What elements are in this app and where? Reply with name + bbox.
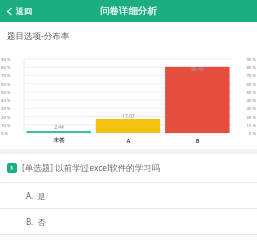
staticText: 50 %: [1, 89, 23, 95]
staticText: 80.49: [163, 66, 232, 73]
staticText: B: [163, 137, 232, 145]
staticText: 10 %: [234, 122, 256, 128]
staticText: A. 是: [26, 190, 46, 201]
staticText: 10 %: [1, 122, 23, 128]
staticText: 返回: [16, 6, 32, 16]
staticText: 40 %: [1, 97, 23, 103]
staticText: 问卷详细分析: [100, 5, 157, 17]
button[interactable]: 返回: [0, 2, 40, 20]
staticText: 70 %: [234, 72, 256, 78]
staticText: 20 %: [234, 114, 256, 120]
staticText: 30 %: [234, 105, 256, 111]
staticText: 2.44: [24, 124, 94, 131]
staticText: 70 %: [1, 72, 23, 78]
staticText: 0 %: [234, 130, 256, 136]
staticText: 90 %: [234, 56, 256, 62]
staticText: 50 %: [234, 89, 256, 95]
staticText: 未答: [24, 137, 94, 144]
staticText: 题目选项-分布率: [7, 30, 70, 42]
staticText: 60 %: [1, 81, 23, 87]
staticText: 1: [10, 164, 14, 172]
staticText: 80 %: [234, 64, 256, 70]
staticText: 40 %: [234, 97, 256, 103]
staticText: 90 %: [1, 56, 23, 62]
button[interactable]: B. 否: [0, 208, 257, 234]
staticText: 17.07: [94, 113, 163, 120]
staticText: 60 %: [234, 81, 256, 87]
staticText: 20 %: [1, 114, 23, 120]
staticText: 30 %: [1, 105, 23, 111]
button[interactable]: 1: [0, 154, 257, 182]
staticText: [单选题] 以前学过excel软件的学习吗: [22, 162, 161, 174]
staticText: 80 %: [1, 64, 23, 70]
staticText: A: [94, 137, 163, 145]
staticText: B. 否: [26, 216, 46, 227]
button[interactable]: A. 是: [0, 182, 257, 208]
staticText: 0 %: [1, 130, 23, 136]
